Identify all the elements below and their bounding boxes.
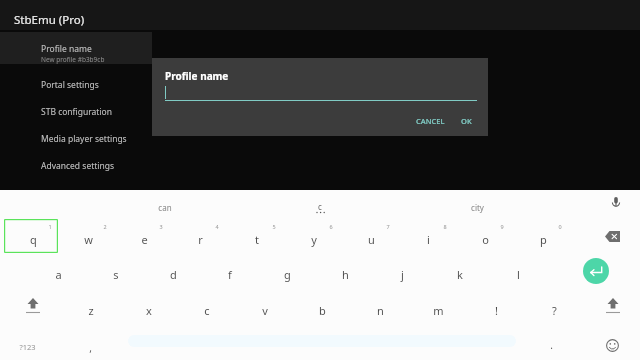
staticText: ?123 — [19, 342, 36, 352]
button[interactable]: Emoji — [592, 332, 632, 358]
staticText: 5 — [272, 223, 276, 230]
staticText: x — [146, 303, 152, 318]
staticText: s — [113, 267, 119, 282]
staticText: y — [311, 232, 317, 247]
staticText: StbEmu (Pro) — [14, 12, 85, 28]
staticText: ! — [495, 303, 498, 318]
button[interactable] — [260, 254, 314, 288]
button[interactable] — [401, 219, 455, 253]
button[interactable] — [130, 192, 202, 212]
button[interactable] — [433, 254, 487, 288]
button[interactable]: OK — [454, 112, 478, 129]
button[interactable]: Backspace — [588, 219, 636, 253]
button[interactable] — [31, 254, 85, 288]
staticText: 7 — [386, 223, 390, 230]
button[interactable] — [117, 219, 171, 253]
staticText: 3 — [159, 223, 163, 230]
staticText: 8 — [443, 223, 447, 230]
staticText: t — [255, 232, 259, 247]
button[interactable] — [146, 254, 200, 288]
button[interactable] — [0, 72, 152, 98]
button[interactable] — [230, 219, 284, 253]
button[interactable] — [287, 219, 341, 253]
staticText: l — [517, 267, 520, 282]
staticText: c — [318, 201, 322, 212]
button[interactable] — [0, 99, 152, 125]
staticText: New profile #b3b9cb — [41, 55, 105, 64]
staticText: 4 — [215, 223, 219, 230]
button[interactable]: Voice input — [608, 194, 624, 210]
button[interactable] — [61, 219, 115, 253]
staticText: v — [262, 303, 268, 318]
staticText: e — [141, 232, 148, 247]
staticText: Advanced settings — [41, 160, 115, 172]
staticText: b — [319, 303, 326, 318]
staticText: a — [55, 267, 62, 282]
button[interactable] — [445, 192, 509, 212]
staticText: OK — [461, 116, 472, 126]
button[interactable] — [344, 219, 398, 253]
button[interactable] — [0, 32, 152, 64]
staticText: can — [158, 202, 172, 213]
staticText: city — [471, 202, 484, 213]
staticText: 9 — [500, 223, 504, 230]
button[interactable] — [469, 290, 523, 324]
button[interactable] — [295, 290, 349, 324]
staticText: 1 — [48, 223, 52, 230]
staticText: i — [427, 232, 430, 247]
staticText: 0 — [558, 223, 562, 230]
button[interactable] — [173, 219, 227, 253]
button[interactable] — [89, 254, 143, 288]
staticText: , — [89, 341, 92, 355]
button[interactable]: Shift — [9, 290, 57, 324]
staticText: p — [540, 232, 547, 247]
staticText: w — [84, 232, 93, 247]
staticText: o — [482, 232, 489, 247]
button[interactable] — [180, 290, 234, 324]
button[interactable] — [290, 192, 350, 212]
staticText: STB configuration — [41, 106, 112, 118]
button[interactable] — [0, 153, 152, 179]
button[interactable] — [411, 290, 465, 324]
staticText: n — [377, 303, 384, 318]
button[interactable] — [353, 290, 407, 324]
button[interactable] — [238, 290, 292, 324]
staticText: . — [550, 338, 553, 352]
button[interactable] — [6, 219, 60, 253]
button[interactable] — [516, 219, 570, 253]
button[interactable] — [318, 254, 372, 288]
staticText: f — [228, 267, 232, 282]
staticText: m — [433, 303, 444, 318]
button[interactable] — [527, 290, 581, 324]
button[interactable] — [64, 290, 118, 324]
staticText: Media player settings — [41, 133, 127, 145]
button[interactable] — [66, 332, 106, 358]
button[interactable] — [375, 254, 429, 288]
staticText: c — [204, 303, 210, 318]
button[interactable] — [122, 290, 176, 324]
button[interactable]: Enter — [572, 254, 620, 288]
staticText: 2 — [103, 223, 107, 230]
staticText: 6 — [329, 223, 333, 230]
staticText: r — [198, 232, 203, 247]
button[interactable]: CANCEL — [408, 112, 452, 129]
staticText: Profile name — [165, 69, 229, 83]
staticText: z — [88, 303, 94, 318]
staticText: Portal settings — [41, 79, 99, 91]
staticText: Profile name — [41, 43, 92, 55]
button[interactable] — [0, 126, 152, 152]
staticText: CANCEL — [416, 116, 445, 126]
staticText: k — [457, 267, 463, 282]
staticText: h — [342, 267, 349, 282]
staticText: ? — [552, 303, 557, 318]
button[interactable] — [6, 332, 56, 358]
button[interactable] — [491, 254, 545, 288]
staticText: u — [368, 232, 375, 247]
button[interactable] — [203, 254, 257, 288]
button[interactable] — [530, 332, 570, 358]
staticText: d — [170, 267, 177, 282]
staticText: j — [401, 267, 404, 282]
button[interactable] — [458, 219, 512, 253]
button[interactable]: Shift — [589, 290, 637, 324]
